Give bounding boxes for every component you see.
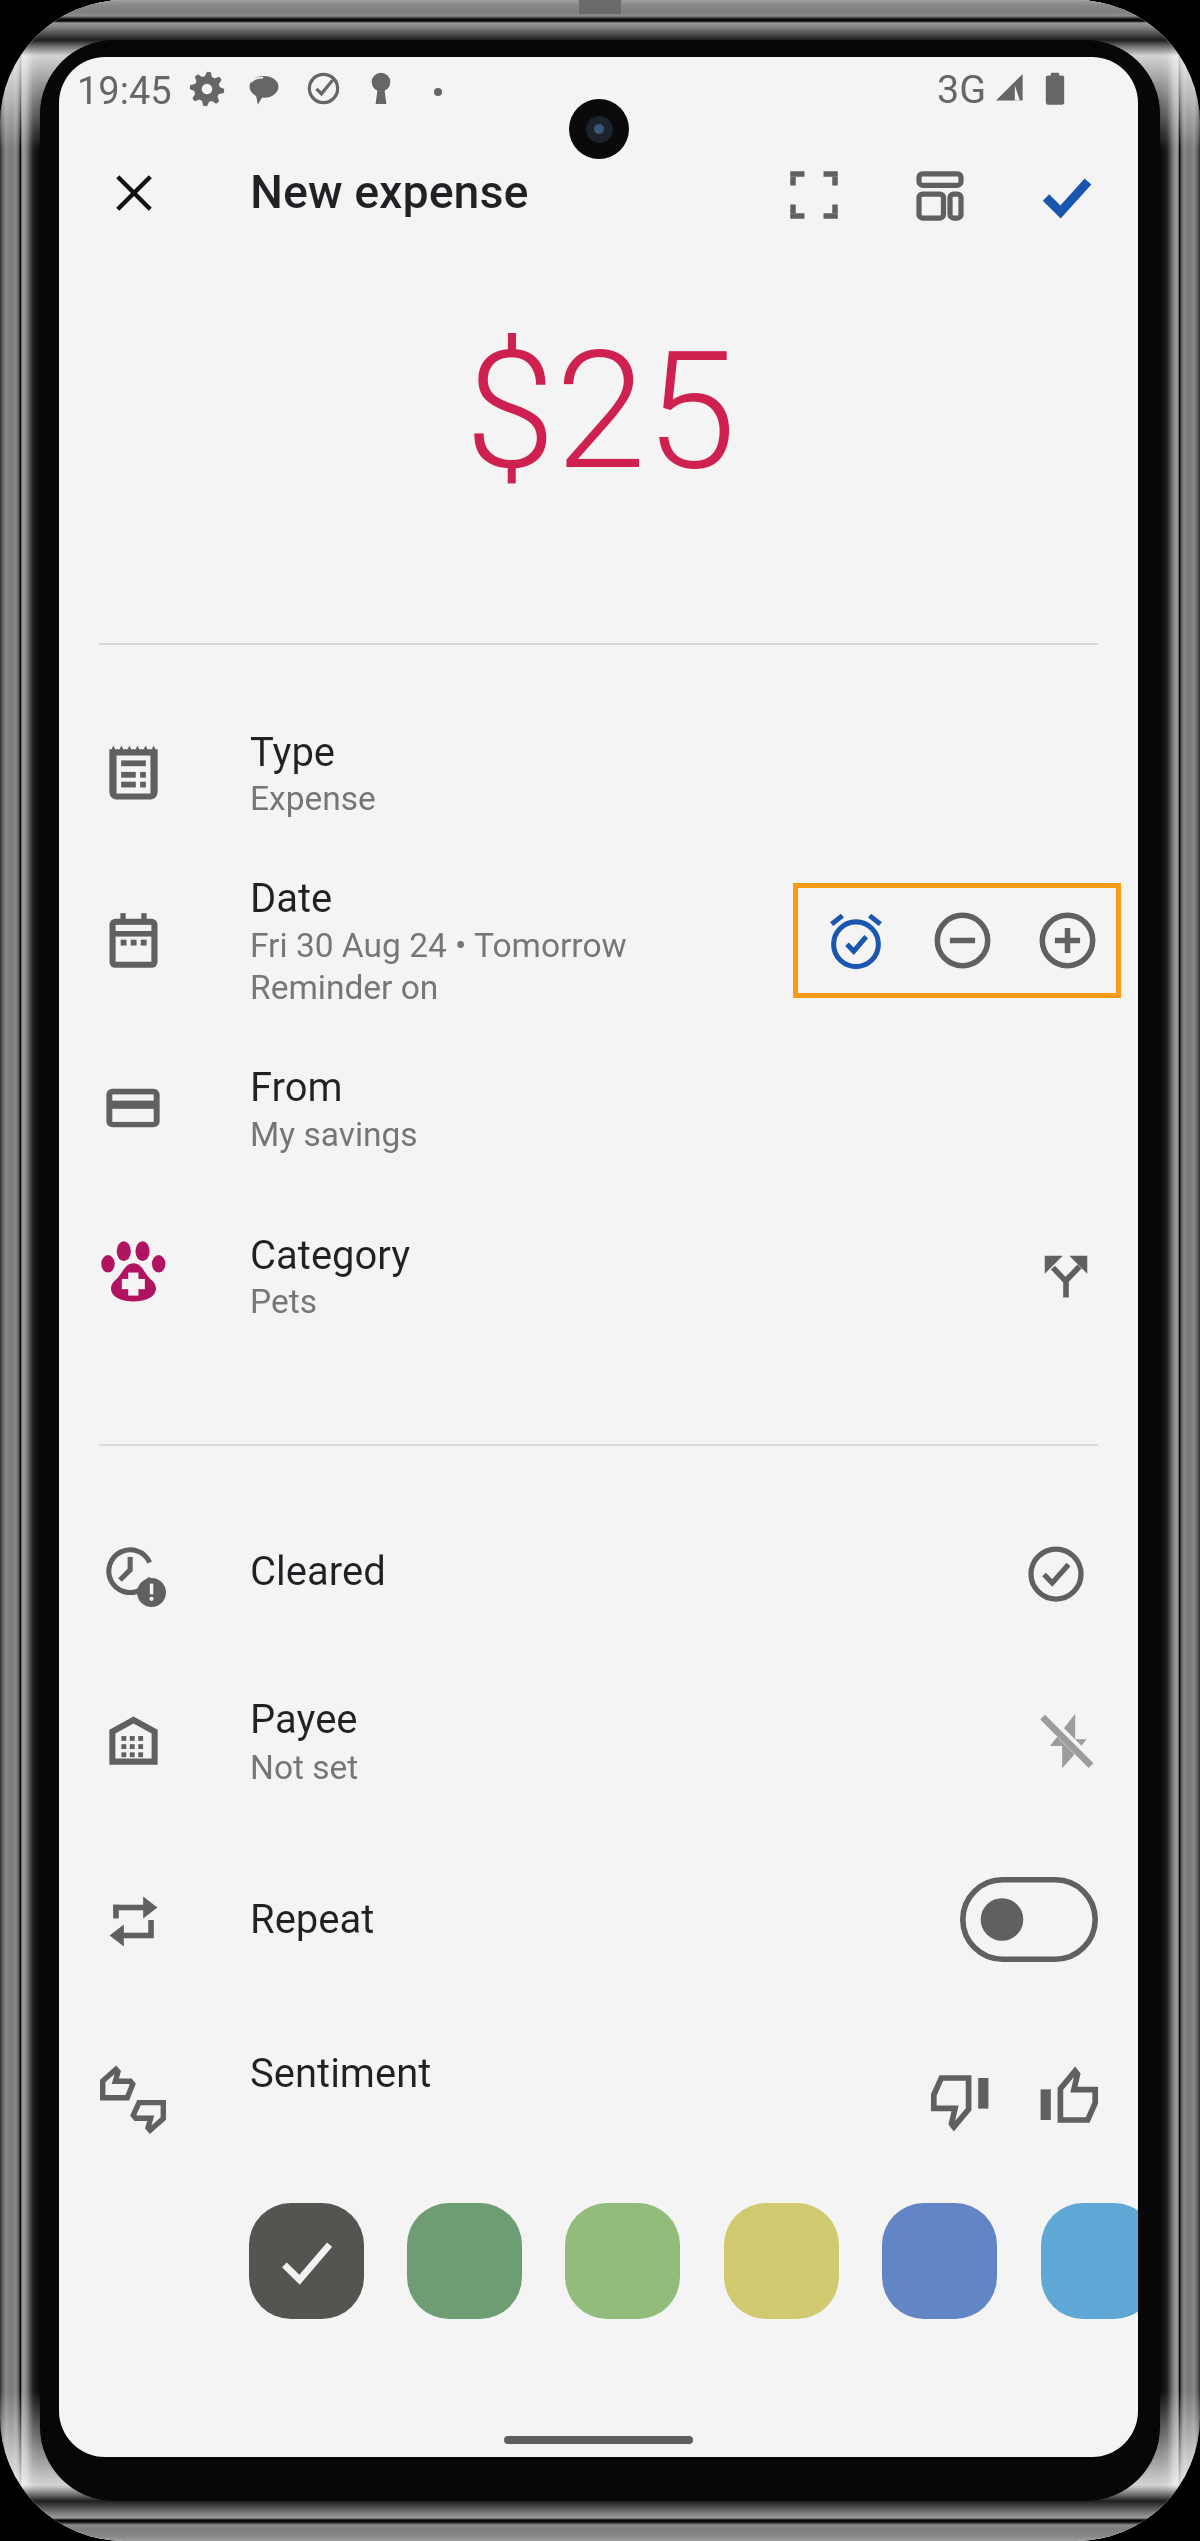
button[interactable]: Colour 4 bbox=[724, 2203, 839, 2319]
staticText: Sentiment bbox=[250, 2050, 432, 2097]
staticText: 19:45 bbox=[77, 69, 172, 114]
staticText: $25 bbox=[465, 316, 737, 507]
button[interactable]: Next day bbox=[1019, 892, 1115, 988]
button[interactable]: Colour 2 bbox=[407, 2203, 522, 2319]
staticText: Category bbox=[250, 1232, 411, 1279]
staticText: Not set bbox=[250, 1748, 359, 1787]
button[interactable]: Close bbox=[84, 143, 184, 243]
staticText: Cleared bbox=[250, 1548, 386, 1595]
staticText: Repeat bbox=[250, 1896, 375, 1943]
staticText: Payee bbox=[250, 1696, 358, 1743]
button[interactable]: From bbox=[83, 1058, 183, 1158]
button[interactable]: Thumb up bbox=[1019, 2048, 1115, 2144]
staticText: Fri 30 Aug 24 • Tomorrow bbox=[250, 926, 627, 965]
button[interactable]: Split category bbox=[1018, 1228, 1114, 1324]
button[interactable]: Cleared bbox=[85, 1526, 185, 1626]
staticText: My savings bbox=[250, 1115, 418, 1154]
staticText: Reminder on bbox=[250, 968, 439, 1007]
button[interactable]: Reminder bbox=[808, 892, 904, 988]
staticText: 3G bbox=[937, 66, 987, 112]
button[interactable]: Fullscreen bbox=[764, 145, 864, 245]
button[interactable]: Sentiment bbox=[81, 2047, 185, 2151]
button[interactable]: Colour 3 bbox=[565, 2203, 680, 2319]
button[interactable]: Cleared toggle bbox=[1008, 1526, 1104, 1622]
staticText: New expense bbox=[250, 165, 529, 219]
button[interactable]: Date bbox=[83, 890, 183, 990]
button[interactable]: Repeat toggle bbox=[960, 1877, 1098, 1962]
button[interactable]: Save bbox=[1017, 146, 1117, 246]
button[interactable]: Category bbox=[81, 1224, 185, 1328]
button[interactable]: Thumb down bbox=[914, 2054, 1010, 2150]
staticText: Expense bbox=[250, 779, 376, 818]
staticText: Date bbox=[250, 875, 333, 922]
button[interactable]: Previous day bbox=[914, 892, 1010, 988]
staticText: Type bbox=[250, 729, 336, 776]
staticText: From bbox=[250, 1064, 343, 1111]
staticText: Pets bbox=[250, 1282, 317, 1321]
button[interactable]: Flash off bbox=[1019, 1693, 1115, 1789]
button[interactable]: Repeat bbox=[83, 1871, 183, 1971]
button[interactable]: Colour 6 bbox=[1041, 2203, 1138, 2319]
button[interactable]: Payee bbox=[83, 1690, 183, 1790]
button[interactable]: Colour 5 bbox=[882, 2203, 997, 2319]
button[interactable]: Colour 1 bbox=[249, 2203, 364, 2319]
button[interactable]: Layout bbox=[890, 146, 990, 246]
button[interactable]: Type bbox=[83, 722, 183, 822]
